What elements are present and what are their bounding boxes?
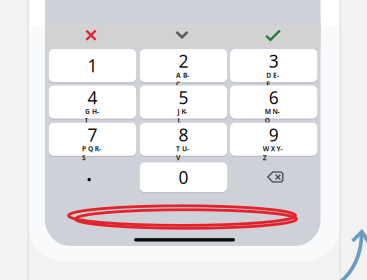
staticText: 3: [269, 50, 279, 73]
staticText: 6: [269, 86, 279, 109]
staticText: 4: [87, 86, 97, 109]
button[interactable]: 6: [230, 85, 317, 119]
staticText: PQRS: [82, 144, 105, 153]
staticText: 1: [87, 54, 97, 77]
button[interactable]: Delete: [232, 162, 319, 192]
staticText: 8: [178, 123, 188, 146]
button[interactable]: Cancel: [74, 24, 108, 47]
staticText: WXYZ: [263, 144, 286, 153]
staticText: MNO: [265, 107, 284, 116]
button[interactable]: 0: [140, 162, 227, 192]
staticText: TUV: [176, 144, 193, 153]
staticText: ABC: [176, 71, 193, 80]
button[interactable]: 3: [230, 49, 317, 82]
staticText: 7: [87, 123, 97, 146]
button[interactable]: Hide keyboard: [165, 23, 199, 46]
button[interactable]: 1: [49, 49, 136, 82]
button[interactable]: 2: [140, 49, 227, 82]
button[interactable]: Done: [256, 24, 290, 47]
staticText: GHI: [85, 107, 102, 116]
button[interactable]: 5: [140, 85, 227, 119]
staticText: 2: [178, 50, 188, 73]
staticText: 0: [178, 166, 188, 189]
staticText: 5: [178, 86, 188, 109]
button[interactable]: Decimal point: [45, 165, 133, 194]
staticText: 9: [269, 123, 279, 146]
button[interactable]: 4: [49, 85, 136, 119]
button[interactable]: 7: [49, 123, 136, 156]
button[interactable]: 8: [140, 123, 227, 156]
staticText: DEF: [266, 71, 283, 80]
staticText: JKL: [177, 107, 191, 116]
button[interactable]: 9: [230, 123, 317, 156]
